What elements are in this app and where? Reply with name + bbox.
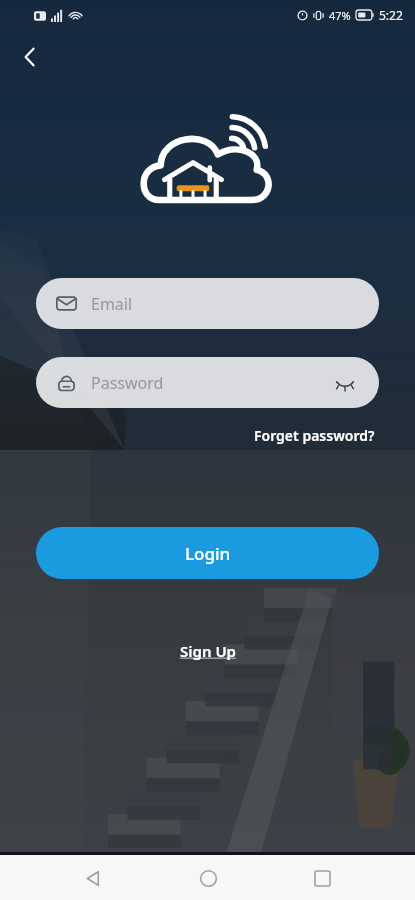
button[interactable]: Forget password?: [250, 422, 379, 449]
staticText: Password: [91, 372, 164, 394]
staticText: Forget password?: [254, 426, 375, 445]
button[interactable]: Home: [186, 856, 230, 900]
staticText: 5:22: [379, 7, 403, 23]
staticText: Email: [91, 293, 133, 315]
button[interactable]: Back: [8, 35, 52, 79]
staticText: Login: [185, 542, 231, 565]
button[interactable]: Back: [71, 856, 115, 900]
button[interactable]: Sign Up: [174, 635, 242, 667]
button[interactable]: Login: [36, 527, 379, 579]
button[interactable]: Show password: [331, 369, 359, 397]
button[interactable]: Password: [36, 357, 379, 408]
staticText: 47%: [329, 8, 351, 23]
button[interactable]: Recents: [300, 856, 344, 900]
staticText: Sign Up: [180, 641, 236, 661]
button[interactable]: Email: [36, 278, 379, 329]
